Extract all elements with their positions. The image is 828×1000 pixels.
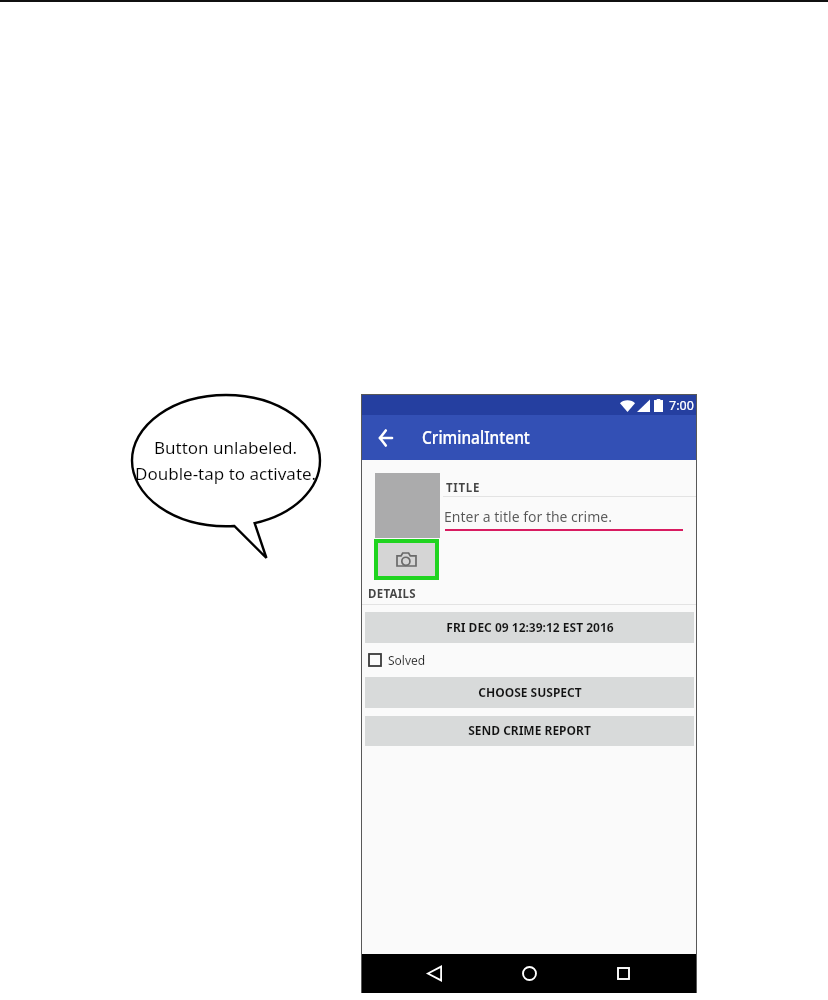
staticText: Double-tap to activate. (135, 462, 317, 485)
button[interactable]: Take a photo of the crime scene (374, 539, 439, 580)
button[interactable]: Home (518, 954, 541, 993)
staticText: DETAILS (368, 586, 416, 602)
button[interactable]: Solved (368, 647, 696, 673)
button[interactable]: Navigate up (362, 415, 408, 460)
staticText: Button unlabeled. (154, 436, 298, 459)
button[interactable]: SEND CRIME REPORT (365, 716, 694, 746)
staticText: CriminalIntent (422, 425, 530, 450)
staticText: Solved (388, 652, 426, 668)
staticText: SEND CRIME REPORT (468, 722, 591, 738)
button[interactable]: CHOOSE SUSPECT (365, 677, 694, 708)
button[interactable]: Recent apps (612, 954, 635, 993)
staticText: 7:00 (669, 397, 694, 414)
staticText: Enter a title for the crime. (444, 507, 612, 526)
staticText: CHOOSE SUSPECT (478, 684, 582, 700)
staticText: TITLE (446, 480, 481, 496)
button[interactable]: FRI DEC 09 12:39:12 EST 2016 (365, 612, 694, 643)
staticText: FRI DEC 09 12:39:12 EST 2016 (446, 619, 614, 635)
button[interactable]: Back (423, 954, 446, 993)
